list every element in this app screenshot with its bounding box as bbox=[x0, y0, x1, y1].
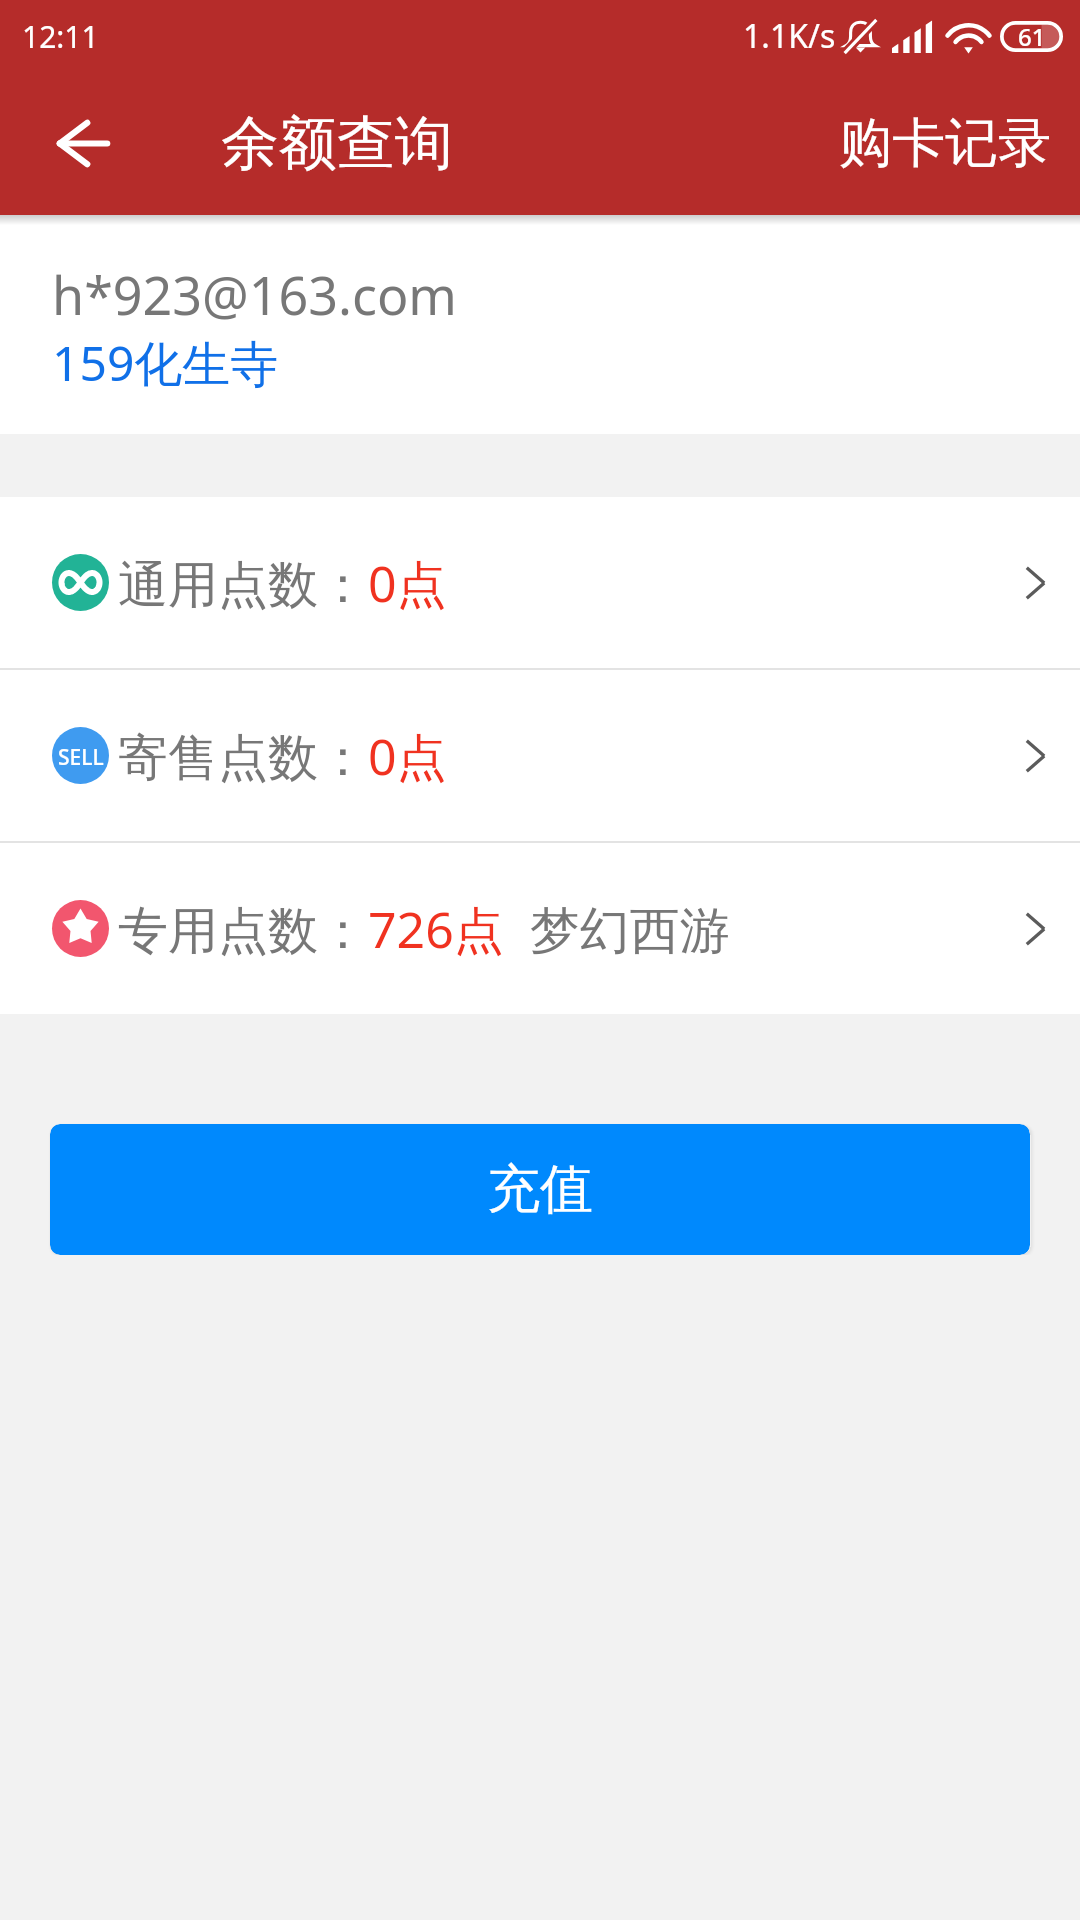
staticText: 12:11 bbox=[22, 16, 99, 57]
staticText: 寄售点数：0点 bbox=[118, 722, 447, 790]
button[interactable]: 通用点数：0点 bbox=[0, 497, 1080, 668]
staticText: 1.1K/s bbox=[743, 14, 836, 58]
staticText: 充值 bbox=[487, 1156, 593, 1223]
button[interactable]: 购卡记录 bbox=[809, 84, 1080, 203]
staticText: 余额查询 bbox=[221, 107, 453, 180]
staticText: 61 bbox=[1018, 20, 1046, 53]
button[interactable]: Back bbox=[0, 72, 138, 215]
button[interactable]: SELL bbox=[0, 670, 1080, 841]
button[interactable]: 专用点数：726点 梦幻西游 bbox=[0, 843, 1080, 1014]
button[interactable]: 充值 bbox=[50, 1124, 1030, 1255]
staticText: SELL bbox=[58, 743, 104, 772]
staticText: 购卡记录 bbox=[839, 110, 1051, 177]
staticText: h*923@163.com bbox=[52, 259, 457, 330]
staticText: 专用点数：726点 梦幻西游 bbox=[118, 895, 730, 963]
staticText: 通用点数：0点 bbox=[118, 549, 447, 617]
staticText: 159化生寺 bbox=[52, 330, 279, 396]
